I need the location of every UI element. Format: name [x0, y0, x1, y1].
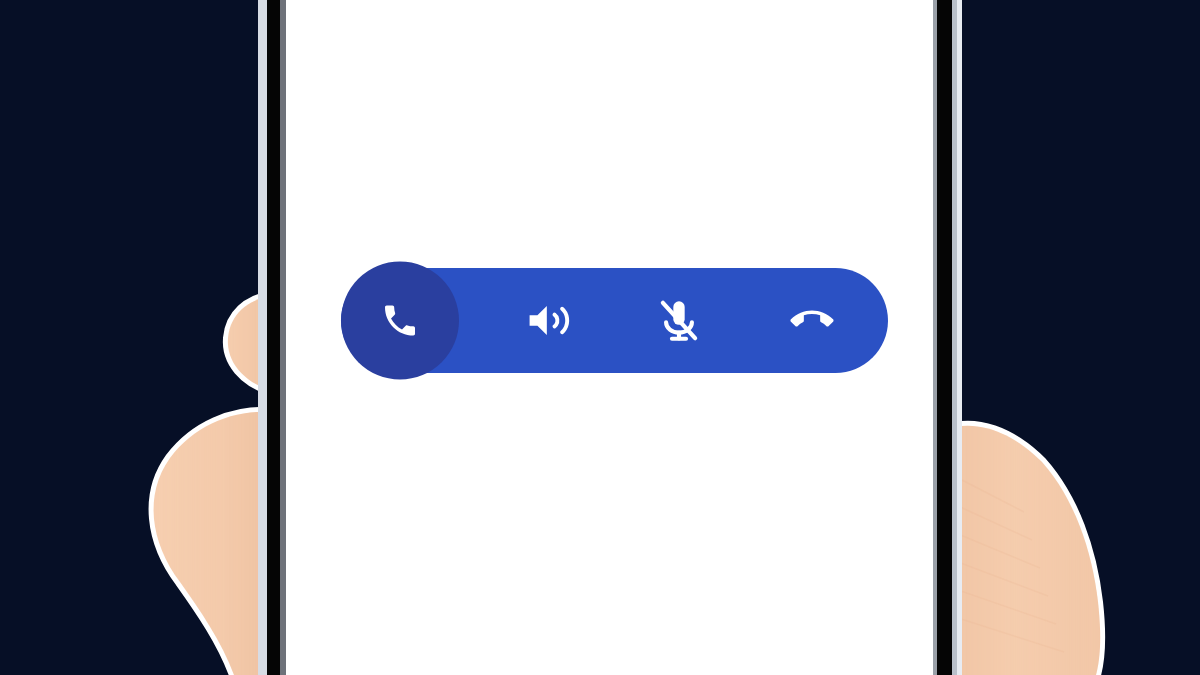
button[interactable]: End call	[738, 268, 882, 373]
button[interactable]: Speaker	[468, 268, 605, 373]
button[interactable]: Mute microphone	[605, 268, 738, 373]
button[interactable]: Call	[347, 268, 468, 373]
